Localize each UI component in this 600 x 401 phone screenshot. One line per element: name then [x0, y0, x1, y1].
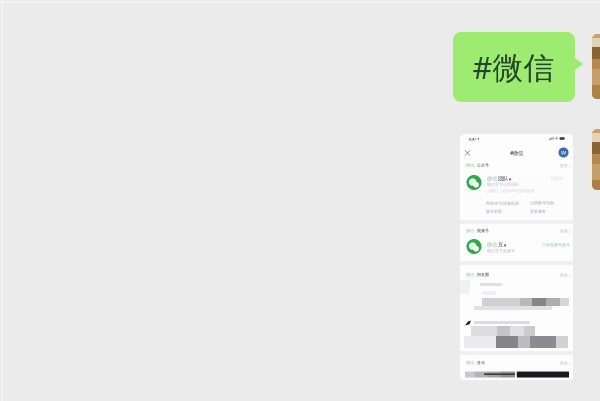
staticText: 更多 [560, 273, 568, 278]
button[interactable]: 微信 [460, 134, 573, 261]
staticText: › [569, 162, 571, 169]
staticText: - [474, 228, 477, 233]
button[interactable]: Close [462, 147, 473, 159]
staticText: 微信 [487, 175, 497, 182]
staticText: › [569, 228, 571, 235]
staticText: 微信 [466, 228, 474, 233]
staticText: 微信官方运营团队 [487, 182, 519, 187]
staticText: 更多 [560, 361, 568, 366]
staticText: 已关注 [551, 176, 563, 181]
staticText: › [569, 272, 571, 279]
staticText: 已有视频号账号 [542, 242, 570, 247]
staticText: #微信 [510, 149, 523, 157]
staticText: 为数亿人提供即时通讯服务 [487, 188, 535, 193]
staticText: 豆 [498, 241, 503, 248]
staticText: 帮助/中文体验反馈 [486, 200, 519, 206]
staticText: 微信 [466, 163, 474, 168]
staticText: 6:47 [469, 136, 476, 142]
staticText: 更多 [560, 163, 568, 168]
staticText: 微信 [466, 272, 474, 277]
button[interactable]: 更多 [554, 360, 571, 366]
staticText: 更多服务 [530, 209, 546, 214]
button[interactable]: Profile [557, 146, 570, 159]
staticText: › [569, 360, 571, 367]
staticText: - [474, 272, 477, 277]
staticText: - [474, 162, 477, 168]
staticText: 音乐 [477, 360, 485, 365]
staticText: W [561, 149, 566, 156]
button[interactable]: 更多 [554, 272, 571, 278]
staticText: 微信 [487, 241, 497, 248]
staticText: 朋友圈 [477, 272, 489, 277]
staticText: 微信官方视频号 [487, 248, 515, 253]
staticText: 团队 [498, 175, 508, 182]
button[interactable]: 微信 [460, 134, 573, 220]
staticText: #微信 [472, 47, 554, 87]
staticText: 微信 [466, 360, 474, 365]
staticText: 版本更新 [486, 209, 502, 214]
staticText: 更多 [560, 229, 568, 234]
button[interactable]: 更多 [554, 228, 571, 234]
staticText: - [474, 360, 477, 365]
button[interactable]: 更多 [554, 163, 571, 169]
staticText: 公众号 [477, 163, 489, 168]
staticText: 注册账号指南 [530, 200, 554, 205]
staticText: 视频号 [477, 228, 489, 233]
